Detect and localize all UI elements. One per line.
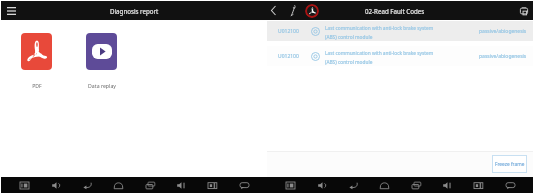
staticText: (ABS) control module bbox=[325, 34, 373, 41]
staticText: U012100 bbox=[278, 53, 299, 60]
staticText: Data replay bbox=[88, 82, 116, 89]
button[interactable]: Data replay bbox=[86, 33, 117, 89]
button[interactable]: PDF bbox=[304, 3, 319, 18]
button[interactable]: Volume up bbox=[314, 177, 330, 193]
button[interactable]: Volume up bbox=[48, 177, 64, 193]
button[interactable]: Recents bbox=[142, 177, 158, 193]
staticText: Diagnosis report bbox=[110, 7, 159, 15]
button[interactable]: U012100 bbox=[267, 46, 533, 66]
button[interactable]: Camera bbox=[470, 177, 486, 193]
staticText: (ABS) control module bbox=[325, 59, 373, 66]
button[interactable]: Menu bbox=[4, 4, 18, 18]
staticText: Last communication with anti-lock brake … bbox=[325, 50, 434, 57]
button[interactable]: Home bbox=[376, 177, 392, 193]
staticText: Last communication with anti-lock brake … bbox=[325, 25, 434, 32]
button[interactable]: U012100 bbox=[267, 21, 533, 41]
button[interactable]: Screenshot bbox=[282, 177, 298, 193]
staticText: Freeze frame bbox=[495, 161, 525, 168]
button[interactable]: Volume down bbox=[173, 177, 189, 193]
staticText: PDF bbox=[32, 82, 42, 89]
button[interactable]: Back bbox=[345, 177, 361, 193]
staticText: passive/abiogenesis bbox=[479, 28, 527, 35]
button[interactable]: Back bbox=[267, 4, 280, 17]
button[interactable]: Camera bbox=[204, 177, 220, 193]
staticText: passive/abiogenesis bbox=[479, 53, 527, 60]
button[interactable]: Back bbox=[79, 177, 95, 193]
button[interactable]: Save report bbox=[518, 5, 530, 17]
button[interactable]: Home bbox=[110, 177, 126, 193]
button[interactable]: Volume down bbox=[439, 177, 455, 193]
button[interactable]: Messages bbox=[502, 177, 518, 193]
button[interactable]: Annotate bbox=[286, 4, 299, 17]
button[interactable]: Recents bbox=[408, 177, 424, 193]
button[interactable]: Messages bbox=[236, 177, 252, 193]
button[interactable]: Freeze frame bbox=[492, 155, 527, 173]
staticText: 02-Read Fault Codes bbox=[365, 7, 425, 15]
button[interactable]: Screenshot bbox=[16, 177, 32, 193]
button[interactable]: PDF bbox=[21, 33, 52, 89]
staticText: U012100 bbox=[278, 28, 299, 35]
